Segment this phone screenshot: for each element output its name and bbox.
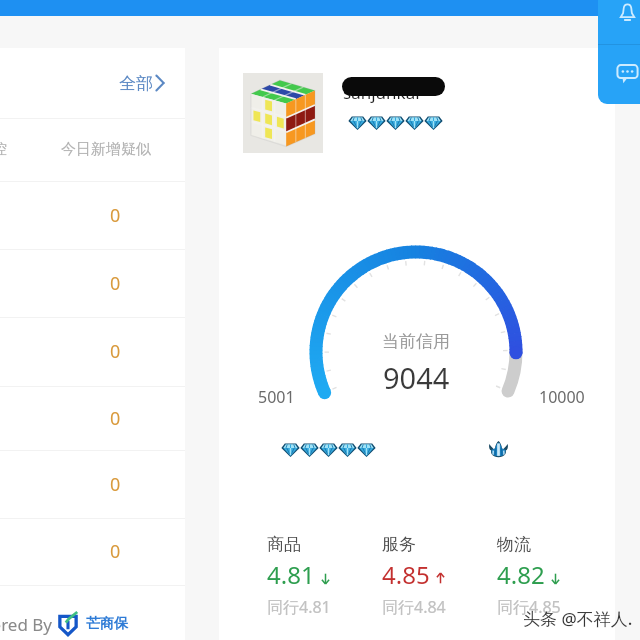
staticText: 今日新增疑似 (61, 140, 151, 159)
staticText: 0 (110, 406, 121, 431)
staticText: 4.85 (382, 558, 430, 591)
button[interactable]: 物流 (497, 534, 561, 610)
button[interactable]: Messages (598, 45, 640, 104)
button[interactable]: 0 (0, 450, 185, 518)
staticText: 管控 (0, 140, 7, 159)
staticText: 芒商保 (86, 615, 128, 633)
button[interactable]: 全部 (119, 72, 167, 94)
button[interactable]: Notifications (598, 0, 640, 44)
staticText: 服务 (382, 534, 416, 555)
staticText: 同行4.85 (497, 596, 561, 618)
button[interactable]: 0 (0, 249, 185, 317)
staticText: 4.81 (267, 558, 315, 591)
staticText: Powered By (0, 613, 53, 636)
staticText: 0 (110, 539, 121, 564)
staticText: sanjunkai (343, 81, 420, 104)
button[interactable]: 0 (0, 518, 185, 585)
button[interactable]: Shop avatar (243, 73, 323, 153)
staticText: 商品 (267, 534, 301, 555)
staticText: 4.82 (497, 558, 545, 591)
button[interactable]: 商品 (267, 534, 331, 610)
staticText: 头条 @不祥人. (523, 607, 633, 630)
staticText: 全部 (119, 73, 153, 94)
staticText: 同行4.81 (267, 596, 331, 618)
staticText: 0 (110, 472, 121, 497)
button[interactable]: Powered By (0, 612, 128, 636)
staticText: 9044 (383, 358, 450, 397)
button[interactable]: 0 (0, 386, 185, 450)
button[interactable]: 0 (0, 181, 185, 249)
staticText: 物流 (497, 534, 531, 555)
button[interactable]: 服务 (382, 534, 446, 610)
staticText: 0 (110, 203, 121, 228)
staticText: 同行4.84 (382, 596, 446, 618)
staticText: 0 (110, 271, 121, 296)
staticText: 0 (110, 339, 121, 364)
staticText: 当前信用 (382, 331, 450, 352)
button[interactable]: 0 (0, 317, 185, 386)
staticText: 10000 (539, 386, 585, 408)
staticText: 5001 (258, 386, 295, 408)
